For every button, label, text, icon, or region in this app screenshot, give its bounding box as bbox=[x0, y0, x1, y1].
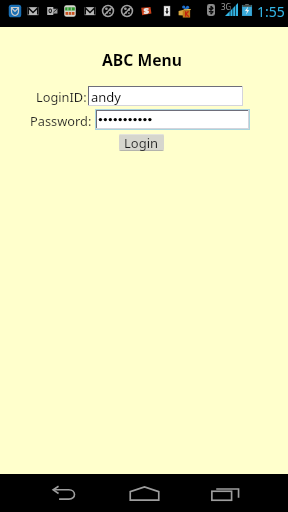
button[interactable]: andy bbox=[88, 86, 243, 106]
button[interactable]: Recent apps bbox=[199, 474, 251, 512]
staticText: Login bbox=[124, 134, 159, 151]
staticText: andy bbox=[91, 88, 121, 106]
staticText: 3G bbox=[221, 1, 232, 12]
staticText: 1:55 bbox=[257, 2, 285, 21]
staticText: LoginID: bbox=[36, 88, 87, 105]
staticText: ABC Menu bbox=[102, 49, 182, 70]
staticText: Password: bbox=[30, 112, 92, 129]
button[interactable]: Home bbox=[118, 474, 170, 512]
button[interactable]: Login bbox=[119, 134, 164, 151]
button[interactable]: Password field bbox=[95, 109, 250, 130]
button[interactable]: Back bbox=[38, 474, 90, 512]
